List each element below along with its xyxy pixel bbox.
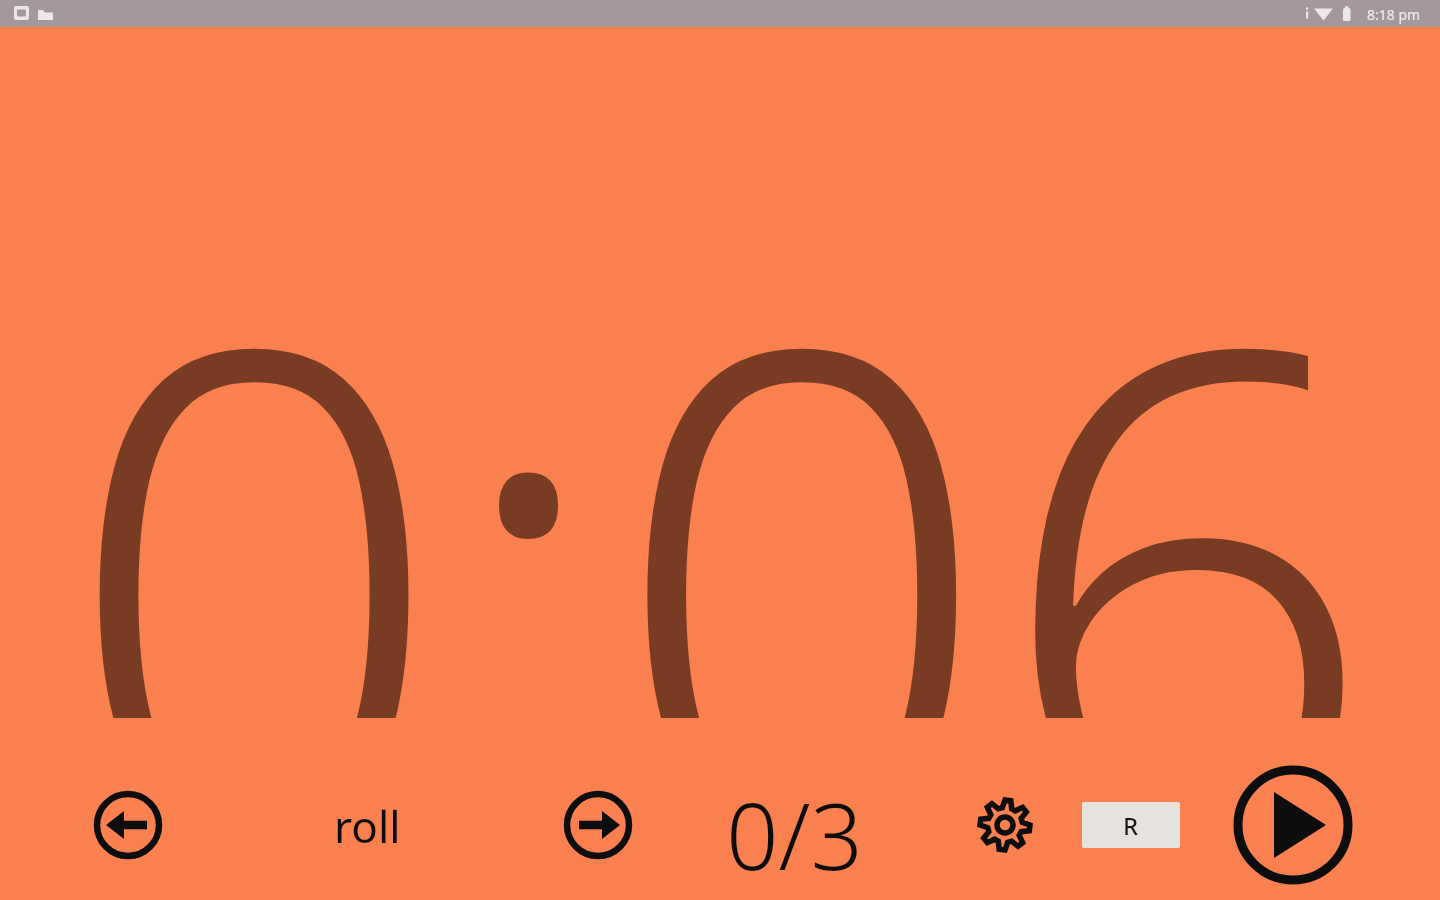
staticText: 0/3 (726, 772, 863, 876)
staticText: 0:06 (62, 118, 1378, 718)
button[interactable]: 0:06 (0, 118, 1440, 718)
button[interactable]: Previous (91, 788, 165, 862)
button[interactable]: Settings (972, 792, 1038, 858)
button[interactable]: Start (1229, 761, 1357, 889)
button[interactable]: R (1082, 802, 1180, 848)
staticText: R (1123, 809, 1139, 842)
staticText: roll (334, 796, 401, 854)
button[interactable]: Next (561, 788, 635, 862)
button[interactable]: roll (318, 796, 416, 854)
staticText: 8:18 pm (1367, 5, 1421, 24)
button[interactable]: 0/3 (698, 772, 890, 876)
